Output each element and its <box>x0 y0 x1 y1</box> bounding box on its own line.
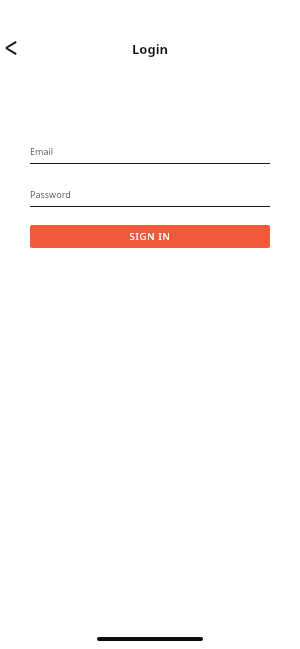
staticText: Password <box>30 188 71 200</box>
button[interactable]: SIGN IN <box>30 225 270 248</box>
staticText: SIGN IN <box>129 230 171 243</box>
staticText: Login <box>0 40 300 58</box>
button[interactable]: Password <box>30 188 270 207</box>
staticText: Email <box>30 145 54 157</box>
button[interactable]: Back <box>0 34 28 62</box>
button[interactable]: Email <box>30 140 270 164</box>
